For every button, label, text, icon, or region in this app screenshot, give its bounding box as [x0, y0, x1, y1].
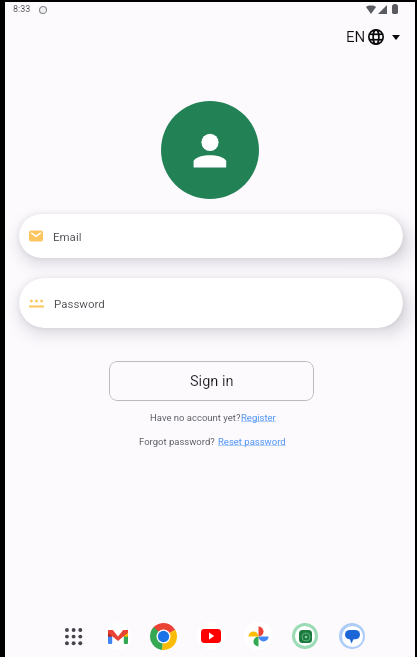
button[interactable]: Reset password — [218, 436, 286, 447]
staticText: Sign in — [190, 373, 234, 390]
button[interactable]: Register — [241, 412, 276, 423]
button[interactable]: Email — [19, 214, 403, 258]
staticText: Have no account yet? — [150, 412, 241, 423]
button[interactable]: YouTube — [194, 619, 228, 653]
button[interactable]: All apps — [56, 619, 90, 653]
button[interactable]: Profile avatar — [161, 101, 259, 199]
staticText: Forgot password? — [139, 436, 218, 447]
button[interactable]: Shopping — [288, 619, 322, 653]
staticText: EN — [346, 28, 366, 46]
button[interactable]: Gmail — [100, 619, 134, 653]
staticText: Password — [54, 297, 105, 310]
button[interactable]: Photos — [241, 619, 275, 653]
button[interactable]: Sign in — [109, 361, 314, 401]
button[interactable]: Change language — [346, 26, 415, 48]
button[interactable]: Messages — [335, 619, 369, 653]
staticText: Reset password — [218, 436, 286, 447]
button[interactable]: Chrome — [146, 619, 180, 653]
staticText: 8:33 — [13, 4, 31, 15]
staticText: Register — [241, 412, 276, 423]
button[interactable]: Password — [19, 278, 403, 328]
staticText: Email — [53, 230, 82, 243]
